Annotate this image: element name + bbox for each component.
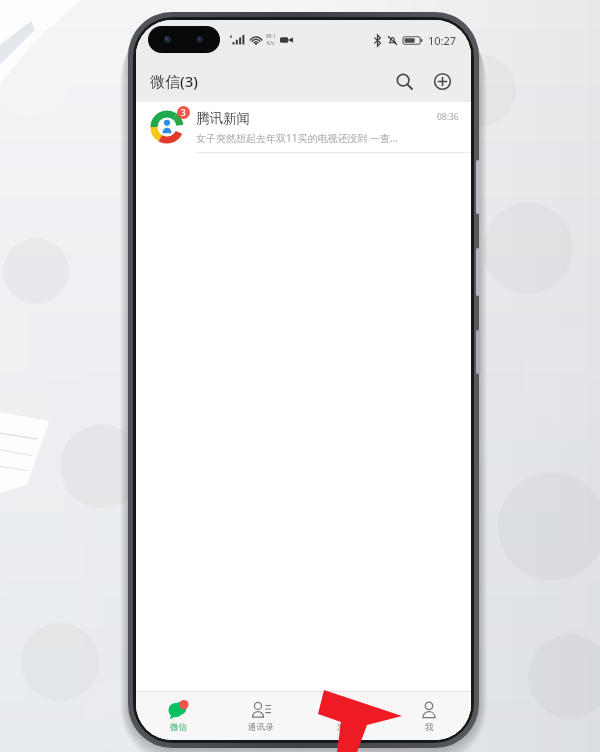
button[interactable]: 通讯录 — [219, 692, 303, 740]
button[interactable]: 发现 — [303, 692, 387, 740]
button[interactable]: 我 — [387, 692, 471, 740]
staticText: 女子突然想起去年双11买的电视还没到 一查… — [196, 131, 398, 145]
staticText: 08:36 — [437, 111, 459, 123]
button[interactable]: 微信 — [136, 692, 219, 740]
staticText: 通讯录 — [248, 722, 274, 733]
button[interactable]: Search — [389, 66, 419, 96]
staticText: 微信(3) — [150, 71, 198, 91]
staticText: 微信 — [170, 722, 187, 733]
staticText: 3 — [181, 107, 186, 118]
button[interactable]: 3 — [136, 102, 471, 152]
staticText: 我 — [425, 722, 434, 733]
staticText: 发现 — [337, 722, 354, 733]
staticText: 腾讯新闻 — [196, 110, 250, 127]
button[interactable]: Add — [427, 66, 457, 96]
staticText: 10:27 — [428, 33, 457, 48]
staticText: K/s — [267, 40, 275, 47]
staticText: 95.1 — [266, 33, 276, 40]
